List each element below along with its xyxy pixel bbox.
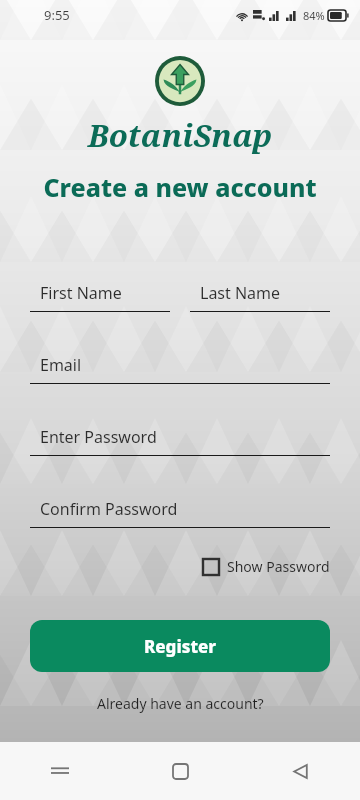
staticText: Last Name xyxy=(200,282,281,304)
button[interactable]: Back xyxy=(240,742,360,800)
staticText: 9:55 xyxy=(44,6,70,24)
button[interactable]: Confirm Password xyxy=(30,498,330,528)
button[interactable]: Show Password xyxy=(203,553,330,580)
button[interactable]: Recent apps xyxy=(0,742,120,800)
button[interactable]: Already have an account? xyxy=(30,690,330,717)
button[interactable]: Home xyxy=(120,742,240,800)
button[interactable]: Last Name xyxy=(190,282,330,312)
button[interactable]: Register xyxy=(30,620,330,672)
button[interactable]: First Name xyxy=(30,282,170,312)
staticText: Enter Password xyxy=(40,426,157,448)
staticText: First Name xyxy=(40,282,122,304)
staticText: Show Password xyxy=(227,557,330,576)
staticText: Already have an account? xyxy=(97,694,264,713)
staticText: 84% xyxy=(303,8,325,23)
button[interactable]: Enter Password xyxy=(30,426,330,456)
staticText: Email xyxy=(40,354,82,376)
staticText: BotaniSnap xyxy=(0,114,360,156)
button[interactable]: Email xyxy=(30,354,330,384)
staticText: Register xyxy=(144,635,217,658)
staticText: Create a new account xyxy=(0,170,360,204)
staticText: Confirm Password xyxy=(40,498,178,520)
